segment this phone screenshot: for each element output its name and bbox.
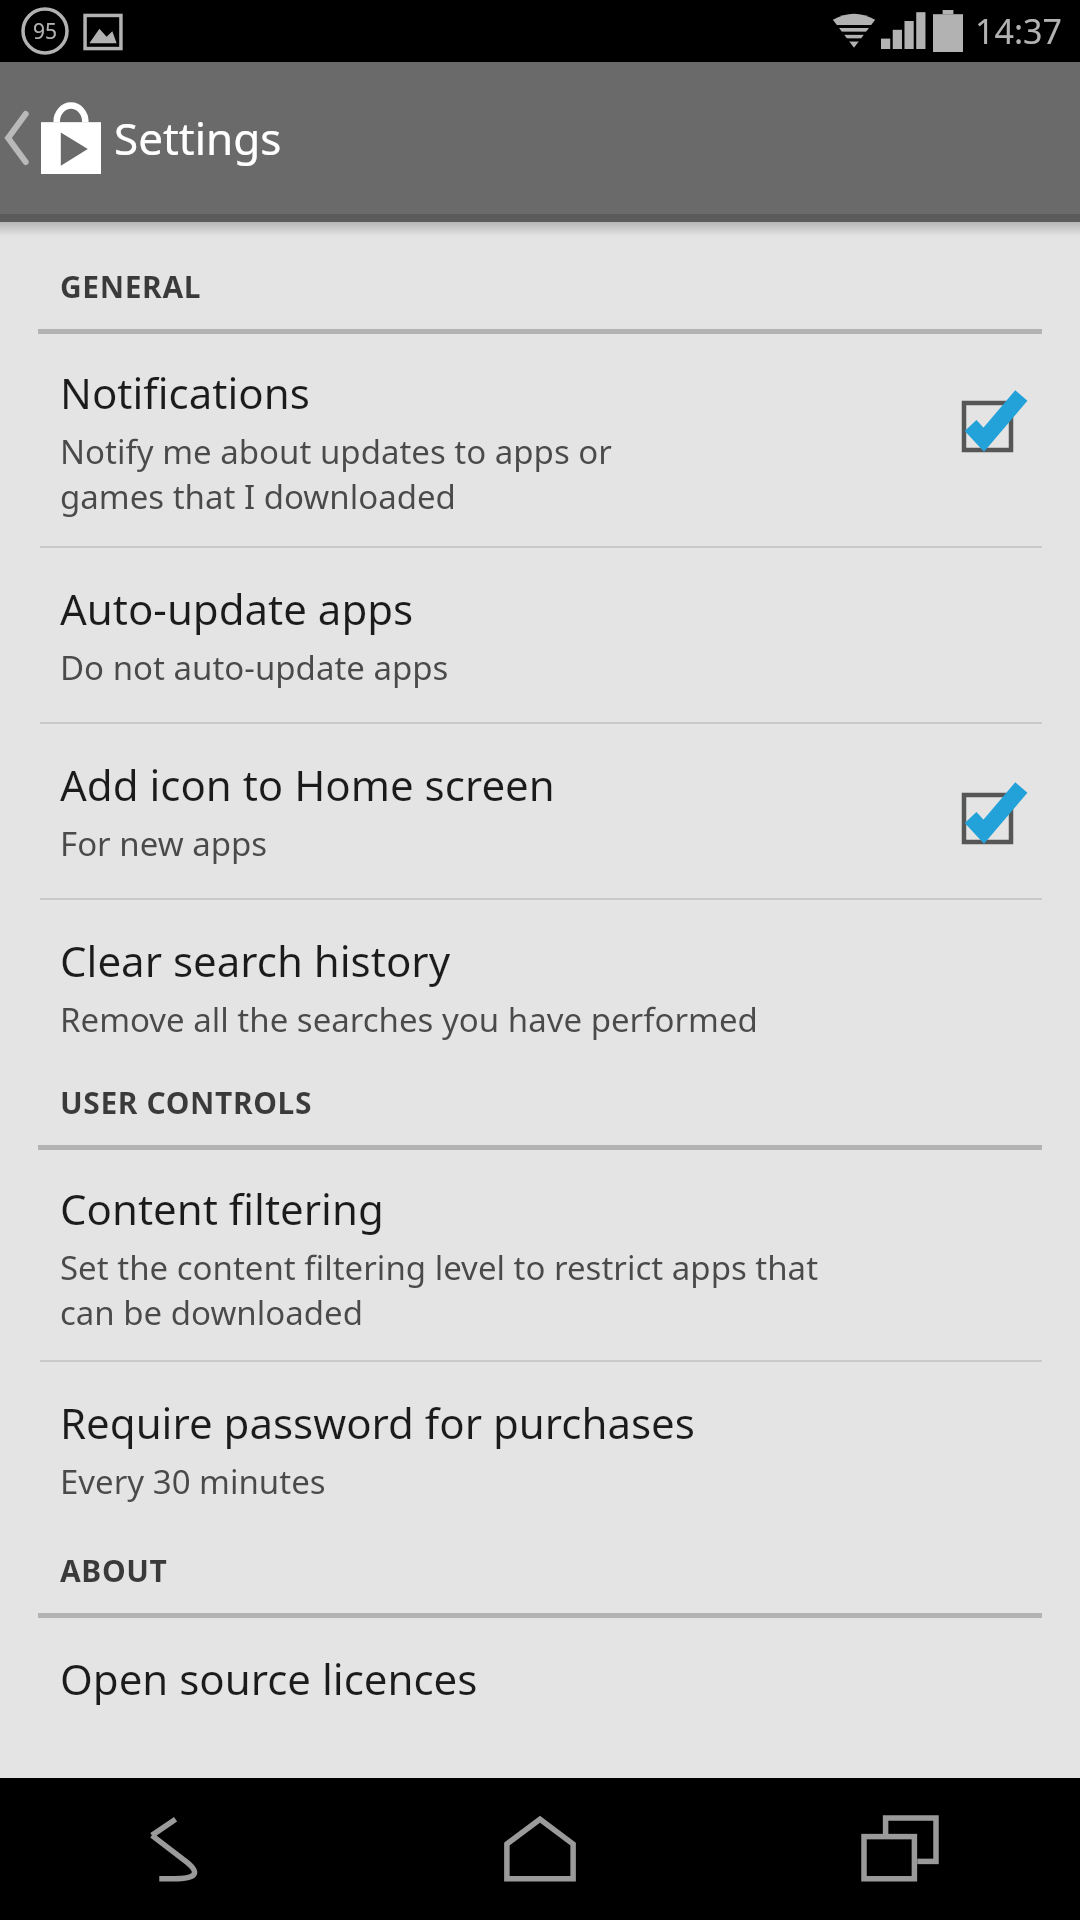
button[interactable]: Notifications (0, 334, 1080, 546)
staticText: Clear search history (60, 932, 451, 989)
button[interactable]: Recent apps (720, 1778, 1080, 1920)
staticText: Set the content filtering level to restr… (60, 1245, 819, 1334)
staticText: Settings (114, 108, 282, 168)
staticText: 14:37 (975, 8, 1062, 54)
staticText: Notify me about updates to apps or games… (60, 429, 612, 518)
staticText: Every 30 minutes (60, 1459, 326, 1504)
button[interactable]: Up (0, 62, 108, 214)
button[interactable]: Back (0, 1778, 360, 1920)
button[interactable]: Require password for purchases (0, 1362, 1080, 1520)
staticText: ABOUT (60, 1550, 168, 1591)
button[interactable]: Clear search history (0, 900, 1080, 1052)
staticText: USER CONTROLS (60, 1082, 313, 1123)
staticText: Do not auto-update apps (60, 645, 449, 690)
staticText: Require password for purchases (60, 1394, 695, 1451)
button[interactable]: Home (360, 1778, 720, 1920)
staticText: Notifications (60, 364, 310, 421)
staticText: GENERAL (60, 266, 202, 307)
staticText: Auto-update apps (60, 580, 414, 637)
button[interactable]: Content filtering (0, 1150, 1080, 1360)
staticText: Open source licences (60, 1650, 478, 1707)
staticText: Add icon to Home screen (60, 756, 555, 813)
staticText: Content filtering (60, 1180, 384, 1237)
staticText: Remove all the searches you have perform… (60, 997, 758, 1042)
button[interactable]: Open source licences (0, 1618, 1080, 1778)
staticText: For new apps (60, 821, 268, 866)
staticText: 95 (25, 17, 65, 46)
button[interactable]: Auto-update apps (0, 548, 1080, 722)
button[interactable]: Add icon to Home screen (0, 724, 1080, 898)
